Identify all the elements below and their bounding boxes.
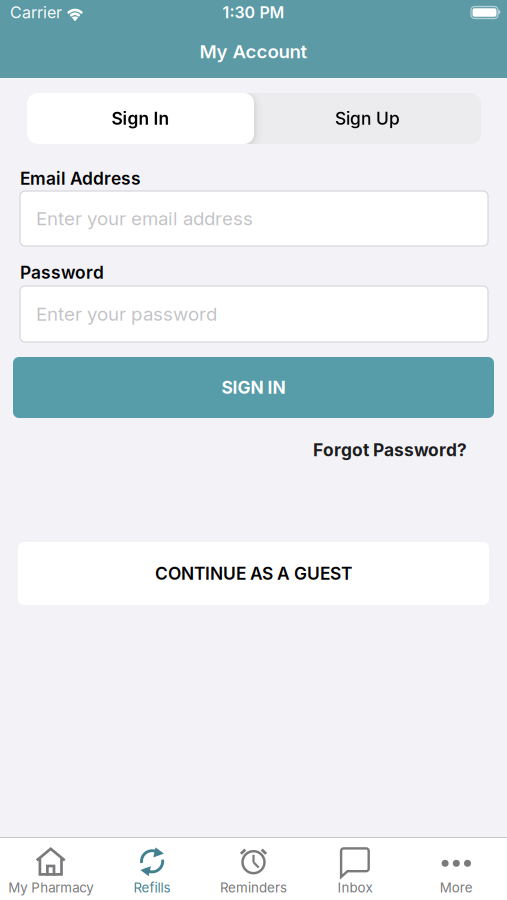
staticText: 1:30 PM: [222, 3, 284, 22]
button[interactable]: Inbox: [304, 846, 406, 896]
staticText: Sign In: [111, 108, 169, 129]
button[interactable]: Refills: [101, 846, 203, 896]
staticText: Reminders: [220, 880, 287, 896]
staticText: Forgot Password?: [313, 440, 467, 460]
button[interactable]: Sign In: [27, 93, 254, 144]
button[interactable]: SIGN IN: [13, 357, 494, 418]
button[interactable]: Reminders: [203, 846, 304, 896]
staticText: More: [440, 880, 473, 896]
staticText: SIGN IN: [221, 377, 285, 398]
staticText: Email Address: [20, 168, 141, 189]
staticText: Inbox: [337, 880, 372, 896]
staticText: CONTINUE AS A GUEST: [155, 563, 352, 584]
button[interactable]: Sign Up: [254, 93, 481, 144]
staticText: Enter your email address: [36, 207, 253, 229]
button[interactable]: My Pharmacy: [0, 846, 101, 896]
staticText: Sign Up: [335, 108, 400, 129]
staticText: Carrier: [10, 3, 62, 22]
staticText: Enter your password: [36, 303, 217, 325]
staticText: My Account: [199, 40, 307, 62]
staticText: Password: [20, 262, 104, 283]
button[interactable]: More: [406, 846, 507, 896]
staticText: My Pharmacy: [8, 880, 93, 896]
button[interactable]: Forgot Password?: [313, 440, 467, 460]
staticText: Refills: [134, 880, 171, 896]
button[interactable]: CONTINUE AS A GUEST: [18, 542, 489, 605]
